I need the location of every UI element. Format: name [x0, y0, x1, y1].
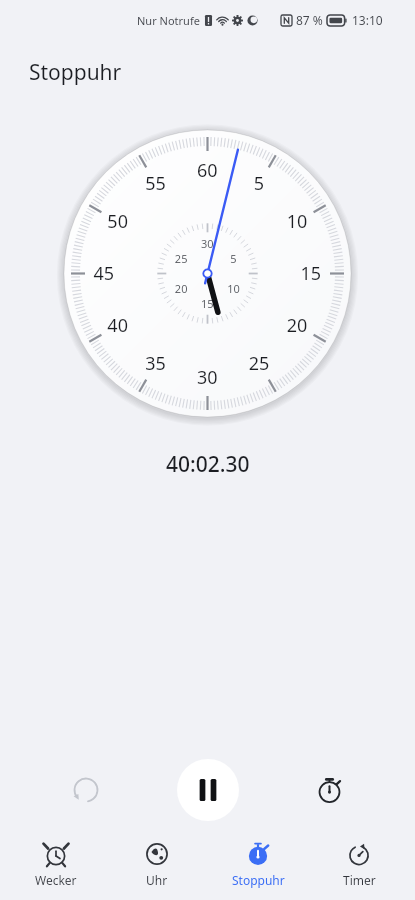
button[interactable]: Pause	[177, 759, 239, 821]
button[interactable]: Timer	[314, 832, 404, 900]
button[interactable]: Runde	[301, 762, 357, 818]
button[interactable]: Zurücksetzen	[58, 762, 114, 818]
staticText: 87 %	[296, 12, 323, 28]
staticText: Stoppuhr	[232, 872, 285, 888]
staticText: Nur Notrufe	[137, 13, 200, 28]
staticText: Stoppuhr	[29, 58, 122, 87]
button[interactable]: Uhr	[112, 832, 202, 900]
staticText: Uhr	[146, 872, 168, 888]
button[interactable]: Stoppuhr	[213, 832, 303, 900]
staticText: Wecker	[35, 872, 77, 888]
staticText: Timer	[343, 872, 376, 888]
staticText: 13:10	[352, 12, 383, 28]
button[interactable]: Wecker	[11, 832, 101, 900]
staticText: 40:02.30	[166, 450, 250, 479]
